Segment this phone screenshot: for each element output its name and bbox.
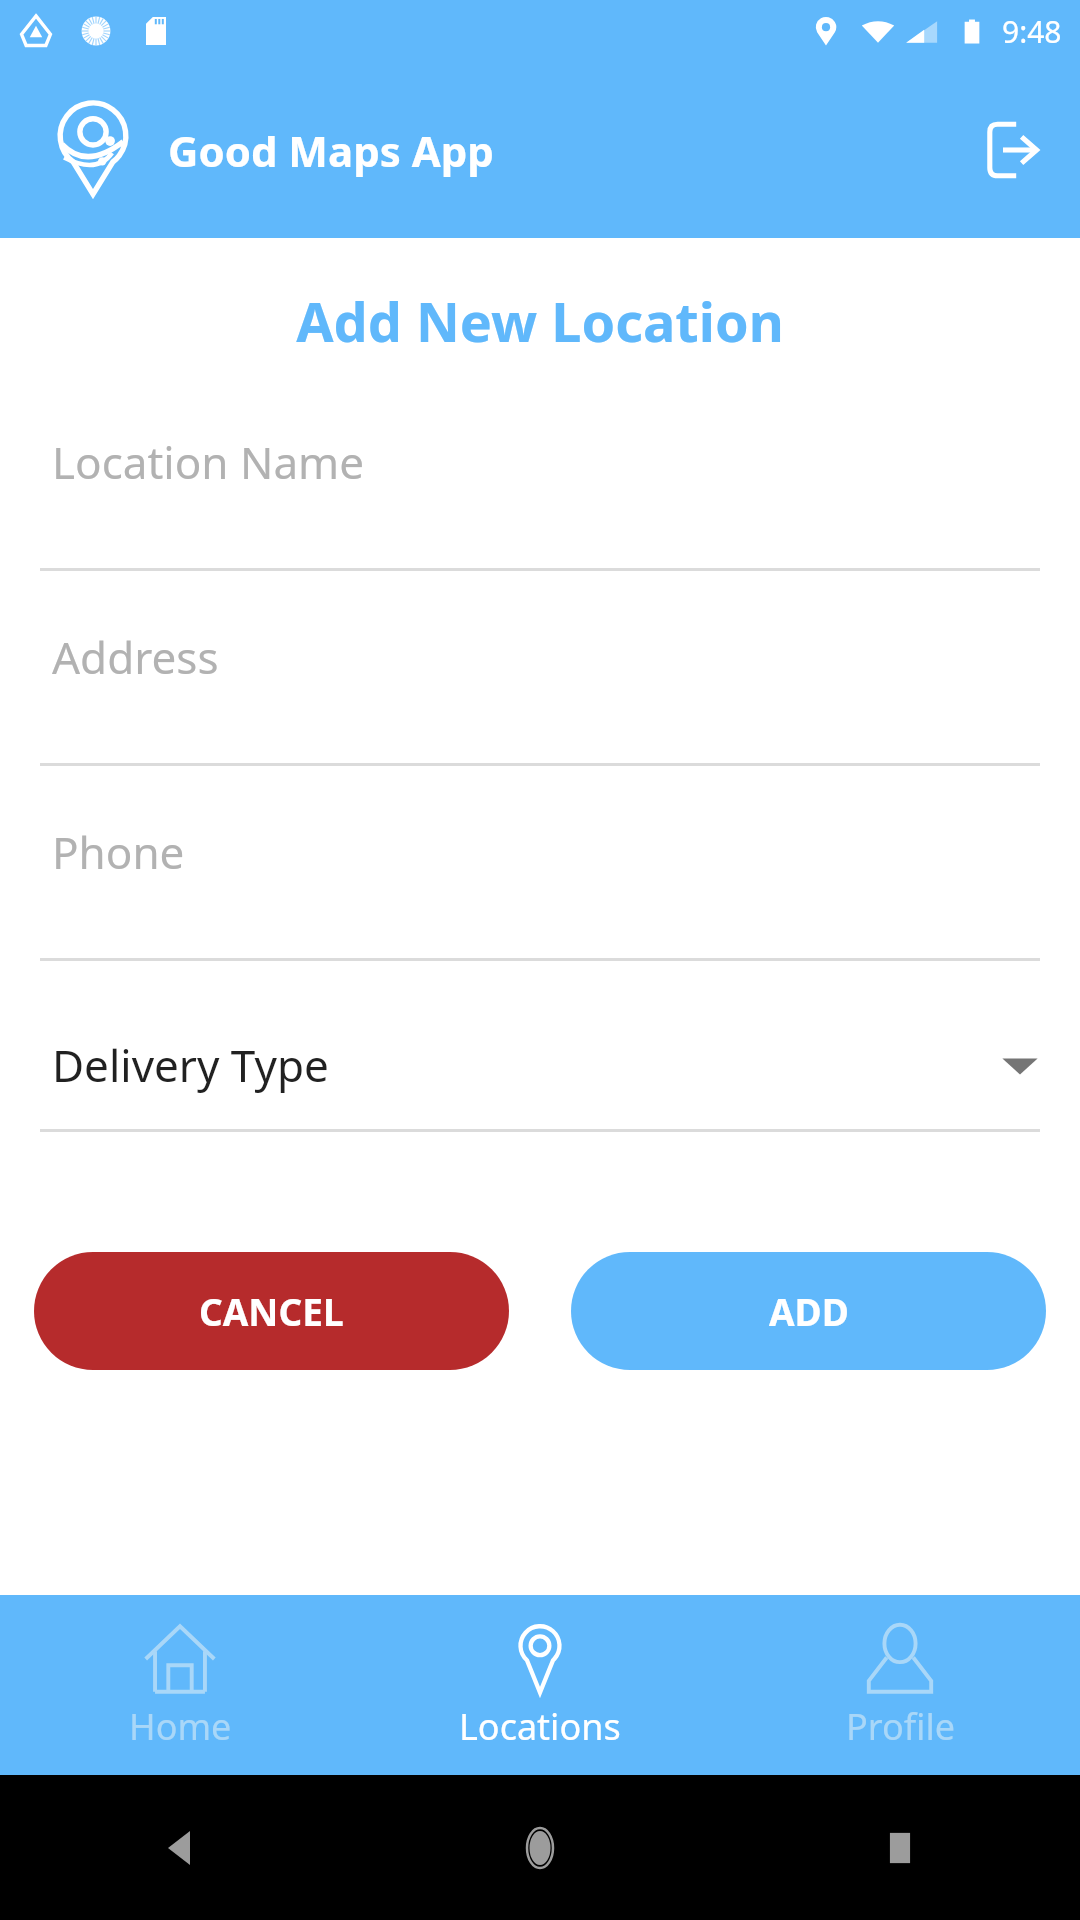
button[interactable]: Home [360,1775,720,1920]
button[interactable]: Locations [360,1595,720,1775]
button[interactable]: Back [0,1775,360,1920]
button[interactable]: Address [40,611,1040,806]
staticText: Location Name [52,432,365,492]
staticText: Add New Location [0,284,1080,358]
button[interactable]: Location Name [40,416,1040,611]
staticText: Good Maps App [168,122,494,179]
button[interactable]: Recents [720,1775,1080,1920]
staticText: 9:48 [1002,11,1062,52]
button[interactable]: Logout [966,107,1052,193]
button[interactable]: Home [0,1595,360,1775]
other: Home [515,1823,565,1873]
staticText: Profile [846,1702,955,1751]
staticText: Home [129,1702,232,1751]
staticText: Phone [52,822,185,882]
other: Recents [879,1827,921,1869]
staticText: Address [52,627,219,687]
staticText: ADD [769,1286,849,1336]
other: Back [155,1823,205,1873]
button[interactable]: Profile [720,1595,1080,1775]
button[interactable]: CANCEL [34,1252,509,1370]
staticText: Locations [459,1702,621,1751]
button[interactable]: ADD [571,1252,1046,1370]
button[interactable]: Delivery Type [40,1001,1040,1132]
button[interactable]: Phone [40,806,1040,1001]
staticText: CANCEL [199,1286,344,1336]
staticText: Delivery Type [52,1035,1000,1095]
